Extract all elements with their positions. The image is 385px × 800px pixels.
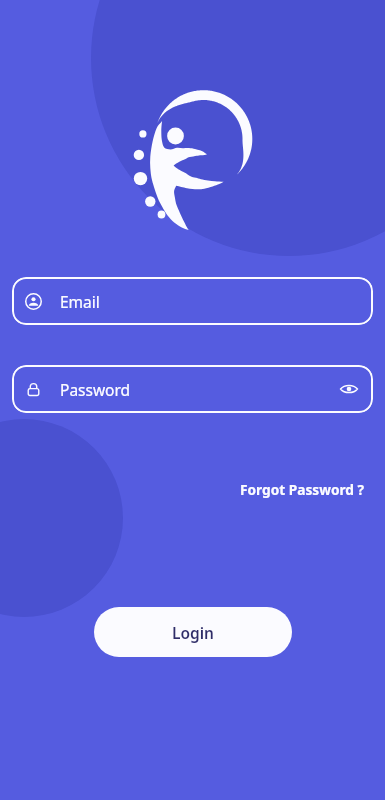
button[interactable]: Password bbox=[12, 365, 373, 413]
button[interactable]: Forgot Password ? bbox=[238, 478, 367, 501]
staticText: Forgot Password ? bbox=[240, 480, 365, 499]
staticText: Login bbox=[172, 622, 215, 643]
staticText: Password bbox=[60, 379, 131, 400]
button[interactable]: Login bbox=[94, 607, 292, 657]
staticText: Email bbox=[60, 291, 100, 312]
button[interactable]: Email bbox=[12, 277, 373, 325]
button[interactable]: Show password bbox=[339, 379, 359, 399]
